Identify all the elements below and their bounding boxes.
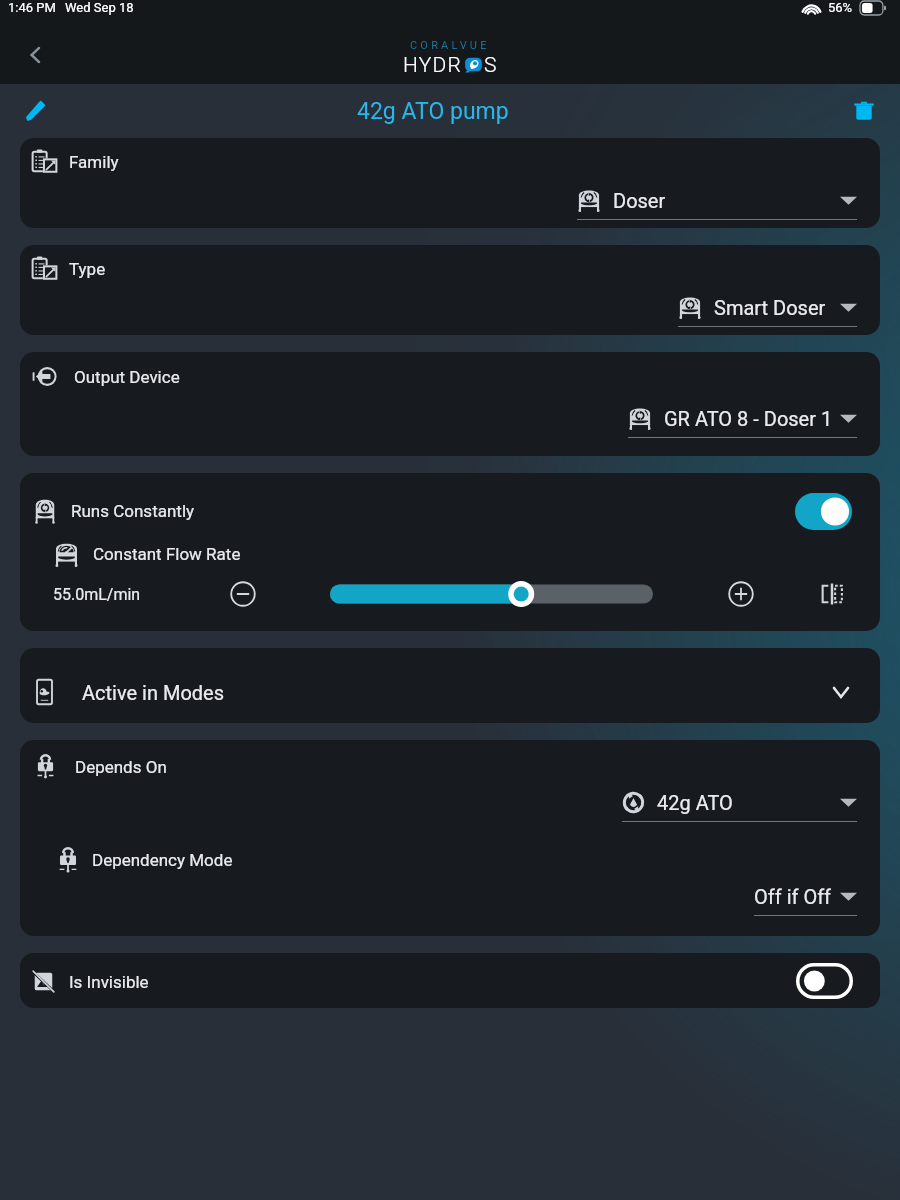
button[interactable]: Off if Off <box>754 882 857 916</box>
staticText: Off if Off <box>754 885 832 908</box>
button[interactable]: 42g ATO <box>622 788 857 822</box>
staticText: Smart Doser <box>714 296 826 319</box>
staticText: Active in Modes <box>82 681 224 704</box>
staticText: 55.0mL/min <box>53 585 141 604</box>
button[interactable]: Family <box>20 138 880 228</box>
staticText: HYDR <box>403 53 463 75</box>
staticText: 56% <box>828 0 853 15</box>
staticText: GR ATO 8 - Doser 1 <box>664 407 833 430</box>
button[interactable]: Increase <box>724 577 758 611</box>
staticText: Family <box>69 152 119 172</box>
staticText: Runs Constantly <box>71 501 195 521</box>
staticText: Constant Flow Rate <box>93 544 241 564</box>
staticText: 42g ATO <box>657 791 733 814</box>
button[interactable]: Expand <box>823 674 859 710</box>
staticText: Doser <box>613 189 666 212</box>
staticText: S <box>484 53 498 75</box>
button[interactable]: Range <box>815 577 849 611</box>
button[interactable]: Type <box>20 245 880 335</box>
button[interactable]: Back <box>16 35 56 75</box>
button[interactable]: Doser <box>577 186 857 220</box>
button[interactable]: Edit <box>14 89 58 133</box>
staticText: Type <box>69 259 106 279</box>
staticText: Dependency Mode <box>92 850 233 870</box>
button[interactable]: Is invisible toggle <box>796 963 853 999</box>
button[interactable]: Smart Doser <box>678 293 857 327</box>
button[interactable]: Depends On <box>20 740 880 936</box>
button[interactable]: 42g ATO pump <box>357 98 509 125</box>
button[interactable]: Delete <box>842 89 886 133</box>
staticText: Is Invisible <box>69 972 149 992</box>
button[interactable]: GR ATO 8 - Doser 1 <box>628 404 857 438</box>
button[interactable]: Runs Constantly toggle <box>795 493 852 530</box>
button[interactable]: Output Device <box>20 352 880 456</box>
staticText: CORALVUE <box>410 39 490 52</box>
staticText: Depends On <box>75 757 167 777</box>
staticText: Wed Sep 18 <box>65 0 134 15</box>
button[interactable]: Decrease <box>226 577 260 611</box>
button[interactable]: Runs Constantly <box>20 473 880 631</box>
button[interactable]: Active in Modes <box>20 648 880 723</box>
staticText: 1:46 PM <box>8 0 56 15</box>
staticText: Output Device <box>74 367 180 387</box>
button[interactable]: Is Invisible <box>20 953 880 1008</box>
